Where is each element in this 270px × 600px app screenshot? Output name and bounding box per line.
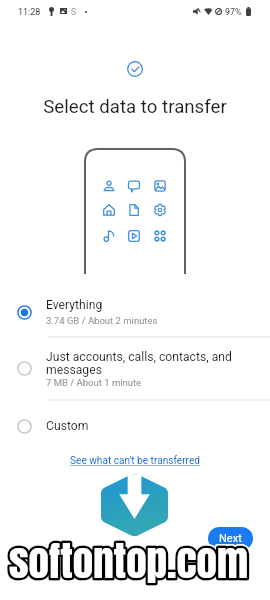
staticText: 97% bbox=[225, 7, 242, 18]
button[interactable]: See what can't be transferred bbox=[0, 455, 270, 467]
staticText: Just accounts, calls, contacts, and bbox=[46, 350, 232, 364]
staticText: softontop.com bbox=[9, 530, 249, 592]
other: Download bbox=[101, 473, 168, 537]
staticText: 11:28 bbox=[18, 7, 41, 18]
button[interactable] bbox=[0, 347, 270, 389]
staticText: Custom bbox=[46, 419, 89, 433]
staticText: 3.74 GB / About 2 minutes bbox=[46, 315, 158, 326]
button[interactable] bbox=[0, 291, 270, 333]
staticText: messages bbox=[46, 363, 102, 377]
staticText: Next bbox=[219, 532, 242, 545]
button[interactable] bbox=[0, 405, 270, 447]
staticText: softontop.com bbox=[9, 530, 249, 592]
staticText: S bbox=[71, 7, 77, 17]
staticText: 7 MB / About 1 minute bbox=[46, 377, 142, 388]
staticText: Select data to transfer bbox=[0, 96, 270, 118]
staticText: softontop.com bbox=[9, 530, 249, 592]
button[interactable]: Next bbox=[208, 527, 253, 550]
staticText: Everything bbox=[46, 298, 103, 312]
